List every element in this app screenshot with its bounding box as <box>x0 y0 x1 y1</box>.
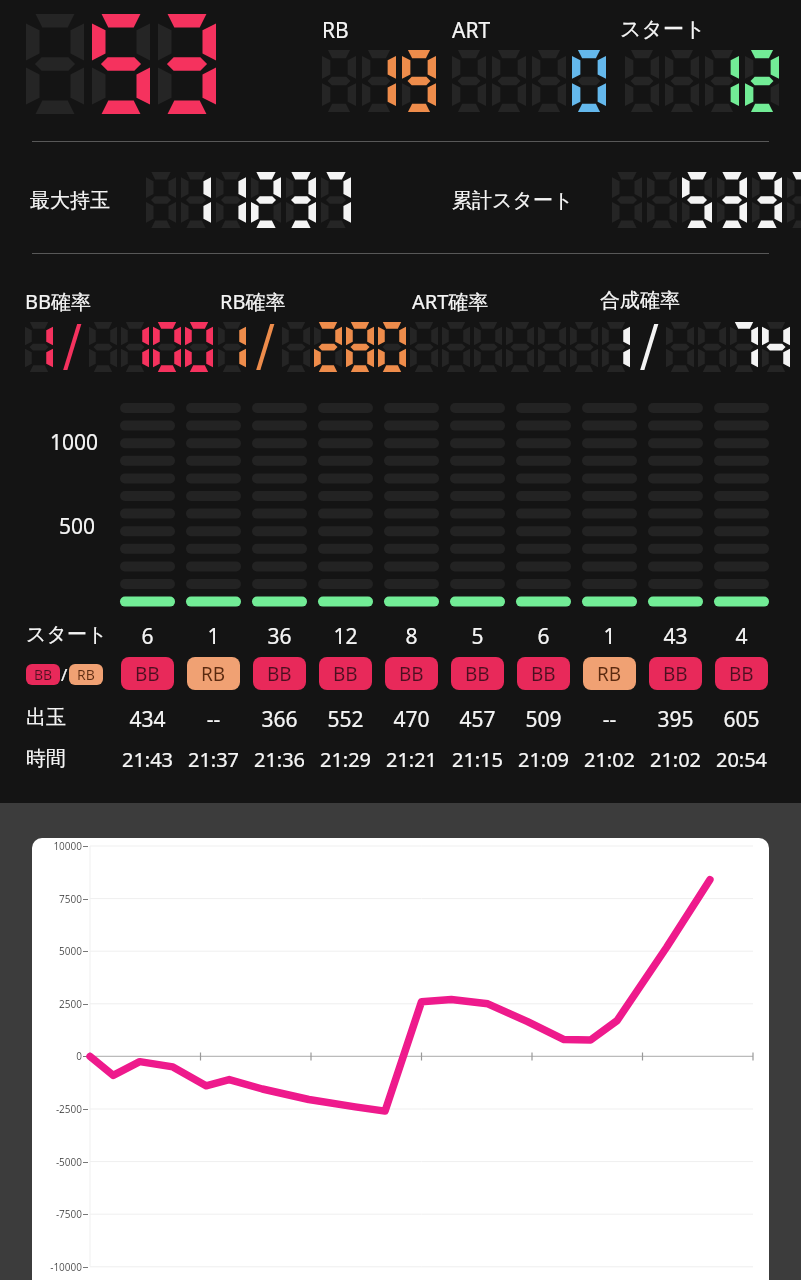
staticText: -2500 <box>34 1102 82 1116</box>
staticText: 605 <box>714 705 769 734</box>
staticText: 1000 <box>50 428 99 457</box>
staticText: 合成確率 <box>600 288 680 313</box>
staticText: 時間 <box>26 746 66 771</box>
staticText: 6 <box>120 622 175 651</box>
staticText: 366 <box>252 705 307 734</box>
staticText: 395 <box>648 705 703 734</box>
staticText: 8 <box>384 622 439 651</box>
staticText: 累計スタート <box>452 188 574 213</box>
staticText: RB <box>597 661 622 687</box>
button[interactable]: RB <box>187 657 240 690</box>
staticText: 500 <box>59 512 96 541</box>
staticText: 出玉 <box>26 705 66 730</box>
staticText: 21:36 <box>247 746 312 773</box>
staticText: ART <box>452 16 491 45</box>
button[interactable]: BB <box>253 657 306 690</box>
staticText: 470 <box>384 705 439 734</box>
staticText: BB <box>465 661 490 687</box>
staticText: 20:54 <box>709 746 774 773</box>
staticText: BB <box>135 661 160 687</box>
staticText: 4 <box>714 622 769 651</box>
staticText: -10000 <box>34 1260 82 1274</box>
staticText: BB <box>531 661 556 687</box>
staticText: -5000 <box>34 1155 82 1169</box>
staticText: BB <box>267 661 292 687</box>
button[interactable]: BB <box>715 657 768 690</box>
staticText: BB確率 <box>25 288 91 315</box>
staticText: 21:02 <box>577 746 642 773</box>
staticText: BB <box>34 665 53 684</box>
staticText: 2500 <box>34 997 82 1011</box>
staticText: 5 <box>450 622 505 651</box>
staticText: RB <box>77 665 95 684</box>
staticText: 21:15 <box>445 746 510 773</box>
staticText: -- <box>186 705 241 734</box>
button[interactable]: BB <box>121 657 174 690</box>
staticText: 552 <box>318 705 373 734</box>
staticText: 509 <box>516 705 571 734</box>
staticText: 12 <box>318 622 373 651</box>
staticText: RB確率 <box>220 288 286 315</box>
staticText: 1 <box>582 622 637 651</box>
staticText: BB <box>663 661 688 687</box>
button[interactable]: RB <box>69 664 103 685</box>
staticText: 434 <box>120 705 175 734</box>
staticText: 21:43 <box>115 746 180 773</box>
staticText: 43 <box>648 622 703 651</box>
staticText: BB <box>399 661 424 687</box>
staticText: -7500 <box>34 1207 82 1221</box>
button[interactable]: BB <box>385 657 438 690</box>
staticText: BB <box>729 661 754 687</box>
staticText: 1 <box>186 622 241 651</box>
staticText: 21:29 <box>313 746 378 773</box>
button[interactable]: RB <box>583 657 636 690</box>
button[interactable]: BB <box>517 657 570 690</box>
button[interactable]: BB <box>319 657 372 690</box>
button[interactable]: BB <box>26 664 60 685</box>
staticText: 10000 <box>34 839 82 853</box>
staticText: BB <box>333 661 358 687</box>
staticText: 0 <box>34 1049 82 1063</box>
staticText: スタート <box>620 16 706 42</box>
button[interactable]: BB <box>649 657 702 690</box>
staticText: 21:09 <box>511 746 576 773</box>
staticText: 5000 <box>34 944 82 958</box>
staticText: 21:21 <box>379 746 444 773</box>
staticText: -- <box>582 705 637 734</box>
staticText: 457 <box>450 705 505 734</box>
staticText: / <box>61 663 68 686</box>
staticText: 7500 <box>34 892 82 906</box>
staticText: スタート <box>26 622 108 647</box>
staticText: 21:02 <box>643 746 708 773</box>
staticText: 21:37 <box>181 746 246 773</box>
button[interactable]: 出玉推移グラフ <box>32 838 769 1280</box>
button[interactable]: BB <box>451 657 504 690</box>
staticText: 最大持玉 <box>30 188 110 213</box>
staticText: RB <box>322 16 349 45</box>
staticText: RB <box>201 661 226 687</box>
staticText: 6 <box>516 622 571 651</box>
staticText: ART確率 <box>412 288 489 315</box>
staticText: 36 <box>252 622 307 651</box>
